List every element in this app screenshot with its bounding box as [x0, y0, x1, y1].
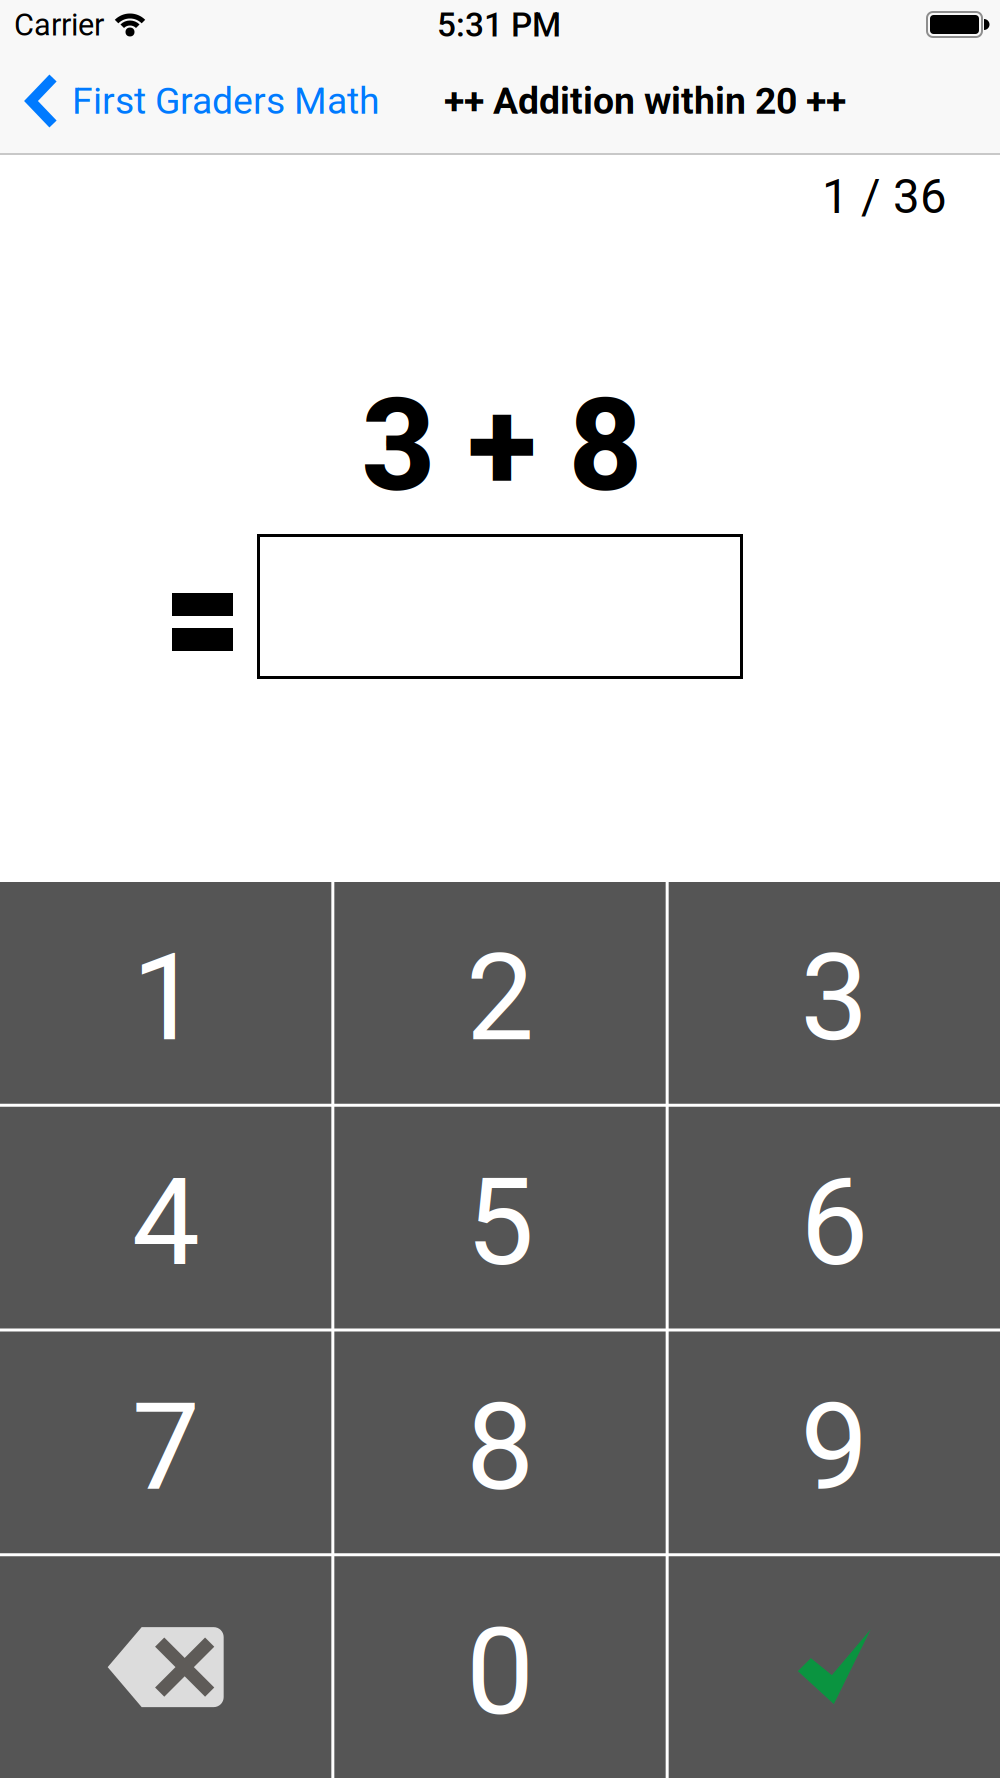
staticText: 0 [466, 1601, 534, 1743]
button[interactable]: 4 [0, 1107, 331, 1329]
button[interactable]: 5 [334, 1107, 666, 1329]
staticText: 4 [132, 1151, 200, 1294]
button[interactable]: 3 [669, 882, 1000, 1104]
staticText: 3 + 8 [361, 371, 642, 521]
staticText: 2 [466, 927, 534, 1069]
staticText: 9 [800, 1376, 868, 1518]
button[interactable]: Submit answer [669, 1556, 1000, 1778]
staticText: 3 [800, 927, 868, 1069]
staticText: ++ Addition within 20 ++ [444, 79, 846, 123]
staticText: 5 [466, 1151, 534, 1294]
button[interactable]: 9 [669, 1331, 1000, 1553]
staticText: 7 [132, 1376, 200, 1518]
staticText: 6 [800, 1151, 868, 1294]
button[interactable]: 6 [669, 1107, 1000, 1329]
staticText: 1 / 36 [822, 169, 947, 224]
button[interactable]: Delete [0, 1556, 331, 1778]
button[interactable]: First Graders Math [26, 75, 380, 127]
staticText: 5:31 PM [437, 5, 561, 45]
button[interactable]: 1 [0, 882, 331, 1104]
staticText: First Graders Math [72, 79, 380, 123]
staticText: Carrier [14, 7, 104, 43]
button[interactable]: 8 [334, 1331, 666, 1553]
button[interactable]: 0 [334, 1556, 666, 1778]
button[interactable]: 7 [0, 1331, 331, 1553]
staticText: 1 [132, 927, 200, 1069]
staticText: 8 [466, 1376, 534, 1518]
button[interactable]: 2 [334, 882, 666, 1104]
